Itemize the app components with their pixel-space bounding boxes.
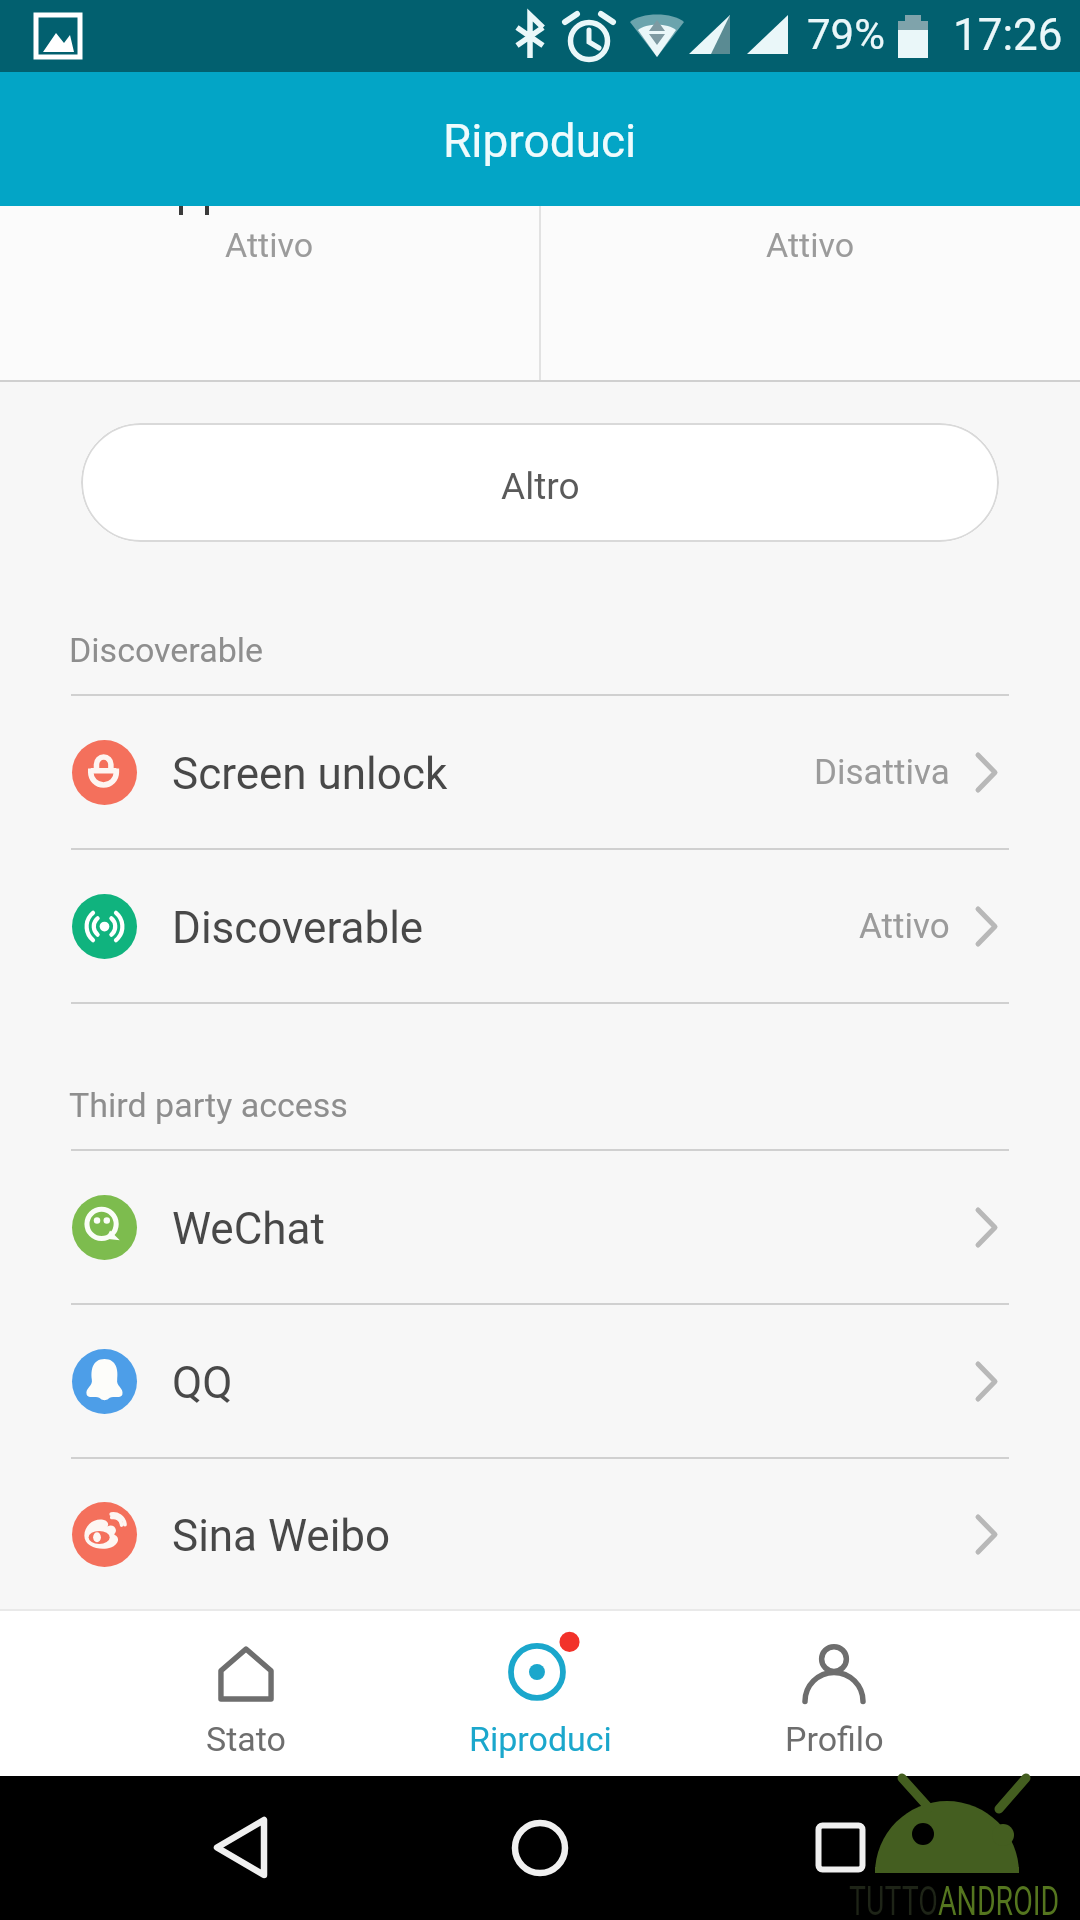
button[interactable]: Stato	[99, 1611, 393, 1776]
staticText: Third party access	[69, 1085, 348, 1125]
button[interactable]: Discoverable	[0, 850, 1080, 1002]
staticText: WeChat	[172, 1203, 325, 1255]
staticText: Profilo	[785, 1719, 884, 1759]
staticText: Discoverable	[69, 630, 264, 670]
staticText: Riproduci	[443, 114, 637, 168]
button[interactable]: Attivo	[0, 206, 539, 380]
button[interactable]: Home	[360, 1776, 720, 1920]
staticText: Screen unlock	[172, 748, 448, 800]
button[interactable]: Attivo	[541, 206, 1080, 380]
button[interactable]: Riproduci	[393, 1611, 687, 1776]
staticText: ANDROID	[938, 1877, 1060, 1920]
staticText: Sina Weibo	[172, 1510, 391, 1562]
staticText: Discoverable	[172, 902, 424, 954]
button[interactable]: Recent apps	[720, 1776, 1080, 1920]
button[interactable]: WeChat	[0, 1151, 1080, 1303]
staticText: 17:26	[953, 9, 1063, 61]
staticText: Altro	[501, 465, 580, 508]
button[interactable]: Back	[0, 1776, 360, 1920]
staticText: 79%	[807, 10, 885, 59]
staticText: Riproduci	[469, 1719, 612, 1759]
button[interactable]: Profilo	[687, 1611, 981, 1776]
staticText: Attivo	[859, 906, 950, 947]
staticText: Disattiva	[814, 752, 950, 793]
staticText: TUTTO	[849, 1877, 938, 1920]
button[interactable]: Sina Weibo	[0, 1459, 1080, 1609]
staticText: Stato	[206, 1719, 286, 1759]
button[interactable]: Screen unlock	[0, 696, 1080, 848]
staticText: QQ	[172, 1357, 233, 1409]
staticText: Attivo	[766, 225, 855, 265]
button[interactable]: Altro	[81, 423, 999, 542]
staticText: Attivo	[225, 225, 314, 265]
button[interactable]: QQ	[0, 1305, 1080, 1457]
